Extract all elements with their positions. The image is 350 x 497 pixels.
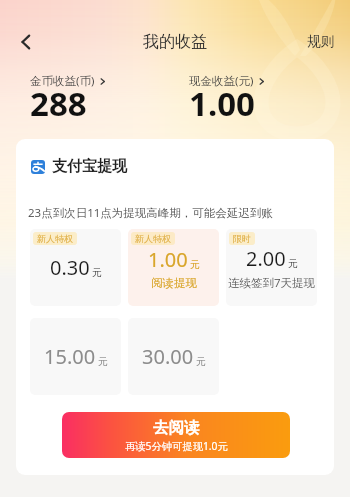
staticText: 再读5分钟可提现1.0元 [125,439,228,453]
staticText: 元 [288,257,298,270]
staticText: 元 [196,355,206,368]
button[interactable]: 金币收益(币) [30,73,106,134]
button[interactable]: 0.30 [30,229,121,306]
staticText: 我的收益 [143,32,207,52]
staticText: 去阅读 [153,418,200,438]
staticText: 0.30 [50,254,90,281]
staticText: 15.00 [44,343,96,370]
staticText: 1.00 [148,246,188,273]
staticText: 1.00 [189,81,255,126]
staticText: 新人特权 [37,233,73,244]
staticText: 元 [92,266,102,279]
staticText: 元 [190,258,200,271]
button[interactable]: 规则 [307,33,334,50]
staticText: 连续签到7天提现 [228,275,316,291]
staticText: 元 [98,355,108,368]
staticText: 阅读提现 [151,276,197,290]
button[interactable]: 现金收益(元) [189,73,265,134]
staticText: 2.00 [246,245,286,272]
button[interactable]: 2.00 [226,229,317,306]
button[interactable]: 1.00 [128,229,219,306]
staticText: 现金收益(元) [189,73,254,89]
button[interactable]: Back [9,25,43,59]
button[interactable]: 去阅读 [62,412,290,458]
staticText: 新人特权 [135,233,171,244]
staticText: 30.00 [142,343,194,370]
staticText: 金币收益(币) [30,73,95,89]
staticText: 支付宝提现 [52,157,127,176]
staticText: 限时 [233,233,251,244]
staticText: 规则 [307,33,334,50]
staticText: 23点到次日11点为提现高峰期，可能会延迟到账 [28,205,273,221]
button[interactable]: 15.00 [30,318,121,395]
staticText: 288 [30,81,87,126]
button[interactable]: 30.00 [128,318,219,395]
